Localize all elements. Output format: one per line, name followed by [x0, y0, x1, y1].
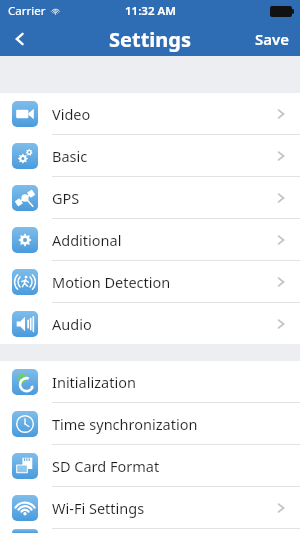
staticText: Additional — [52, 230, 122, 250]
staticText: Save — [255, 29, 290, 49]
button[interactable]: Video — [0, 93, 300, 135]
button[interactable]: Time synchronization — [0, 403, 300, 445]
staticText: Settings — [109, 26, 191, 53]
staticText: Wi-Fi Settings — [52, 498, 145, 518]
staticText: Motion Detection — [52, 272, 171, 292]
button[interactable]: Motion Detection — [0, 261, 300, 303]
staticText: Video — [52, 104, 91, 124]
button[interactable]: Basic — [0, 135, 300, 177]
staticText: SD Card Format — [52, 456, 160, 476]
button[interactable] — [0, 529, 300, 533]
staticText: Initialization — [52, 372, 136, 392]
button[interactable]: Initialization — [0, 361, 300, 403]
button[interactable]: Back — [0, 22, 40, 56]
staticText: Time synchronization — [52, 414, 198, 434]
staticText: Basic — [52, 146, 88, 166]
staticText: 11:32 AM — [125, 3, 176, 19]
staticText: GPS — [52, 188, 80, 208]
staticText: Carrier — [8, 3, 46, 19]
button[interactable]: Save — [245, 22, 300, 56]
button[interactable]: GPS — [0, 177, 300, 219]
button[interactable]: SD Card Format — [0, 445, 300, 487]
button[interactable]: Wi-Fi Settings — [0, 487, 300, 529]
button[interactable]: Additional — [0, 219, 300, 261]
staticText: Audio — [52, 314, 92, 334]
button[interactable]: Audio — [0, 303, 300, 344]
